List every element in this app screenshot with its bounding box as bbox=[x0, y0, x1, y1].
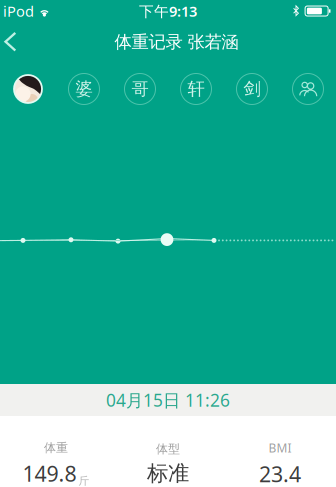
staticText: 剑 bbox=[243, 78, 260, 100]
button[interactable]: 04月15日 11:26 bbox=[0, 384, 336, 416]
staticText: 149.8 bbox=[22, 459, 76, 487]
button[interactable]: 剑 bbox=[236, 73, 267, 104]
button[interactable]: 哥 bbox=[124, 73, 155, 104]
staticText: 哥 bbox=[131, 78, 148, 100]
staticText: 体型 bbox=[156, 441, 180, 456]
staticText: 婆 bbox=[75, 78, 92, 100]
staticText: 23.4 bbox=[259, 460, 301, 487]
button[interactable]: 轩 bbox=[180, 73, 211, 104]
staticText: 体重 bbox=[44, 440, 68, 455]
button[interactable]: 婆 bbox=[68, 73, 99, 104]
button[interactable]: Back bbox=[0, 22, 40, 62]
staticText: 轩 bbox=[187, 78, 204, 100]
staticText: 斤 bbox=[78, 474, 89, 487]
staticText: 下午9:13 bbox=[139, 1, 197, 21]
staticText: 体重记录 张若涵 bbox=[114, 31, 238, 53]
staticText: iPod bbox=[3, 1, 34, 21]
staticText: 标准 bbox=[147, 460, 189, 486]
button[interactable]: Add member bbox=[292, 73, 323, 104]
button[interactable]: 张若涵 bbox=[0, 70, 56, 108]
staticText: BMI bbox=[268, 440, 291, 456]
staticText: 04月15日 11:26 bbox=[106, 388, 230, 411]
